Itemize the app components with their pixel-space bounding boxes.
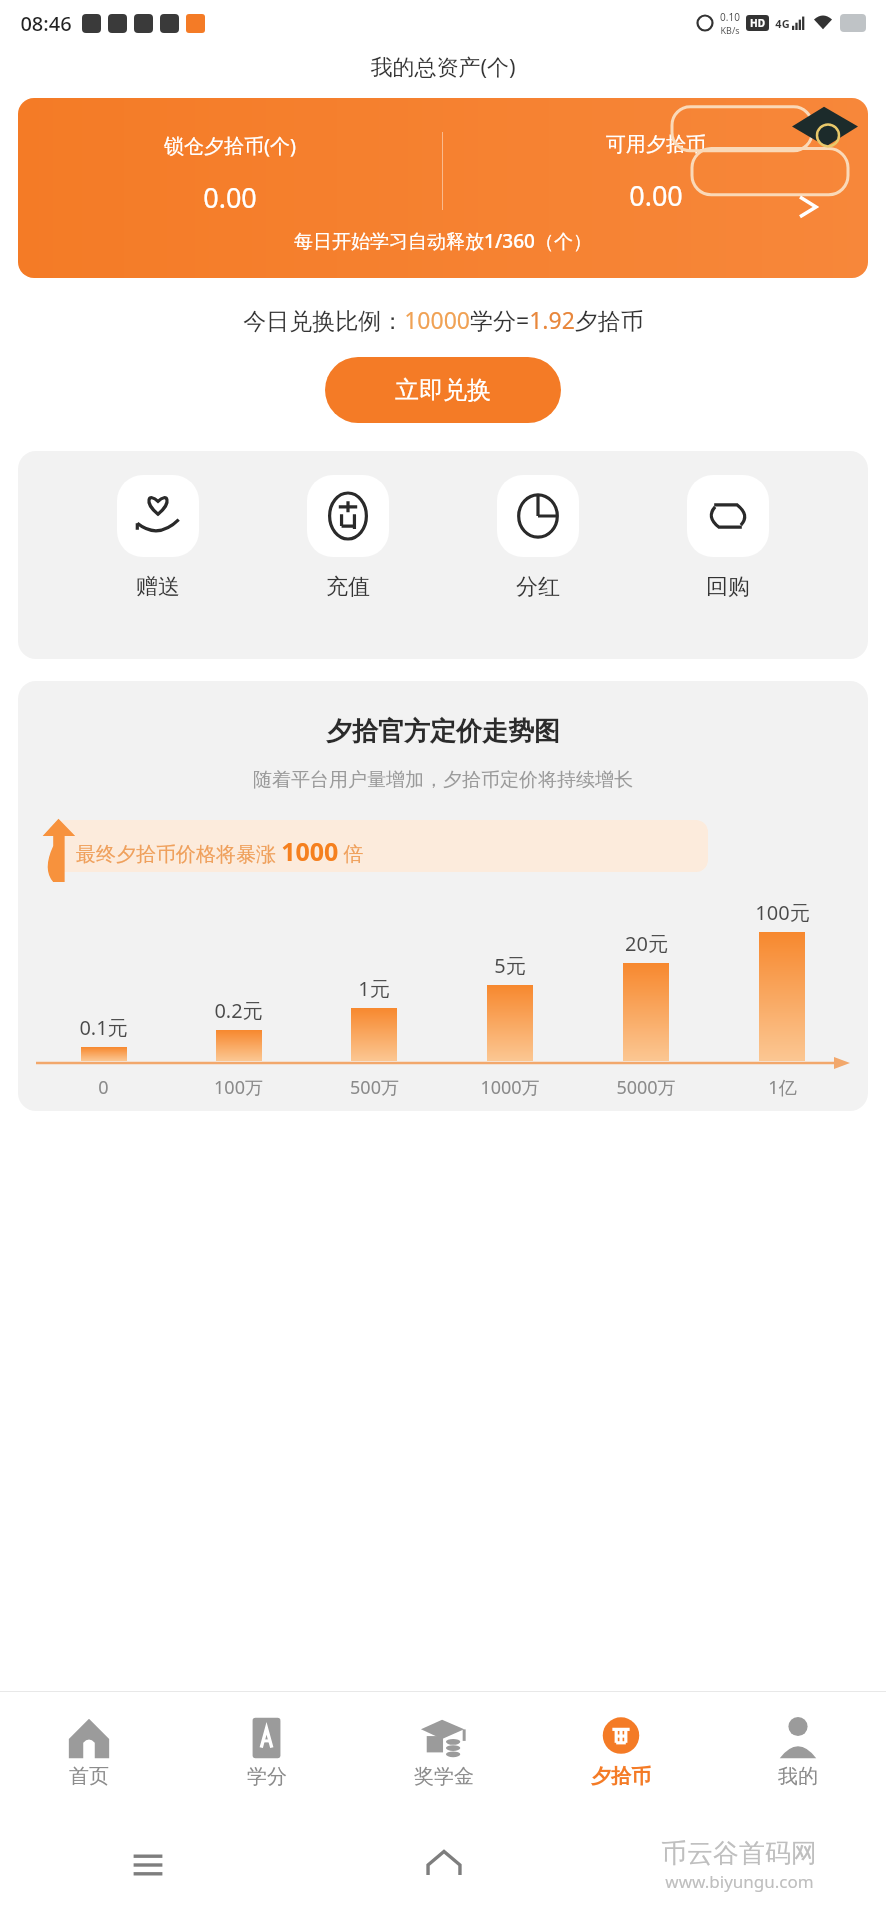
button[interactable]: Home xyxy=(423,1844,465,1886)
button[interactable]: 我的 xyxy=(709,1692,886,1810)
staticText: 100元 xyxy=(755,899,810,926)
staticText: 0.1元 xyxy=(79,1014,128,1041)
button[interactable]: 分红 xyxy=(478,475,598,601)
staticText: HD xyxy=(750,16,765,30)
staticText: 1元 xyxy=(358,975,390,1002)
staticText: 夕拾币 xyxy=(591,1764,651,1789)
staticText: 币云谷首码网 xyxy=(661,1837,817,1870)
staticText: 奖学金 xyxy=(414,1764,474,1789)
staticText: 20元 xyxy=(625,930,668,957)
staticText: 我的 xyxy=(778,1764,818,1789)
button[interactable]: 奖学金 xyxy=(355,1692,532,1810)
button[interactable]: 回购 xyxy=(668,475,788,601)
staticText: 500万 xyxy=(350,1075,399,1100)
staticText: 最终夕拾币价格将暴涨 1000 倍 xyxy=(76,834,364,868)
staticText: 随着平台用户量增加，夕拾币定价将持续增长 xyxy=(253,768,633,792)
staticText: 每日开始学习自动释放1/360（个） xyxy=(294,228,592,254)
staticText: 1000万 xyxy=(480,1075,540,1100)
staticText: 学分 xyxy=(247,1764,287,1789)
staticText: 0.00 xyxy=(203,179,257,216)
staticText: 1亿 xyxy=(768,1075,797,1100)
staticText: 立即兑换 xyxy=(395,375,491,405)
button[interactable]: 赠送 xyxy=(98,475,218,601)
staticText: 100万 xyxy=(214,1075,263,1100)
staticText: 回购 xyxy=(706,573,750,601)
staticText: 08:46 xyxy=(20,10,72,37)
button[interactable]: 立即兑换 xyxy=(325,357,561,423)
staticText: 夕拾官方定价走势图 xyxy=(326,715,560,748)
staticText: 今日兑换比例：10000学分=1.92夕拾币 xyxy=(243,304,644,335)
staticText: 5元 xyxy=(494,952,526,979)
button[interactable]: 首页 xyxy=(0,1692,178,1810)
staticText: KB/s xyxy=(720,24,740,36)
staticText: 锁仓夕拾币(个) xyxy=(164,132,296,159)
staticText: 我的总资产(个) xyxy=(370,51,516,81)
button[interactable]: 奖学金发放计划 xyxy=(664,98,864,208)
staticText: 充值 xyxy=(326,573,370,601)
staticText: 首页 xyxy=(69,1764,109,1789)
staticText: 分红 xyxy=(516,573,560,601)
button[interactable]: 学分 xyxy=(178,1692,355,1810)
staticText: 4G xyxy=(775,16,790,31)
staticText: 0.00 xyxy=(629,177,683,214)
staticText: 5000万 xyxy=(616,1075,676,1100)
staticText: 0.2元 xyxy=(214,997,263,1024)
staticText: 赠送 xyxy=(136,573,180,601)
button[interactable]: 充值 xyxy=(288,475,408,601)
staticText: www.biyungu.com xyxy=(665,1870,814,1893)
button[interactable]: 锁仓夕拾币(个) xyxy=(18,98,868,278)
staticText: 0 xyxy=(98,1075,109,1100)
staticText: 0.10 xyxy=(720,10,740,24)
staticText: 可用夕拾币 xyxy=(606,132,706,157)
button[interactable]: Recent apps xyxy=(128,1845,168,1885)
button[interactable]: 夕拾币 xyxy=(532,1692,709,1810)
